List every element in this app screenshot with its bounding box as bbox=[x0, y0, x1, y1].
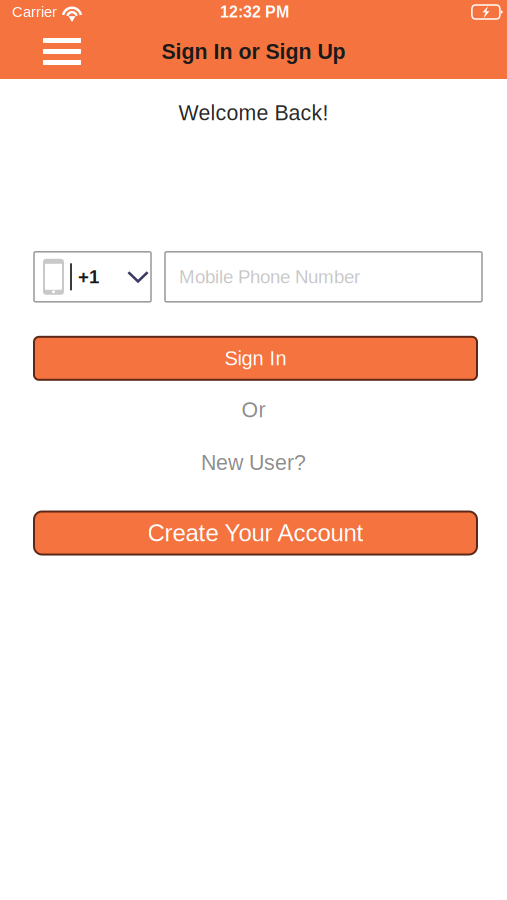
staticText: Or bbox=[241, 398, 265, 422]
button[interactable]: Mobile Phone Number bbox=[165, 252, 482, 302]
button[interactable]: Menu bbox=[0, 24, 100, 79]
staticText: 12:32 PM bbox=[220, 3, 289, 21]
staticText: Carrier bbox=[12, 4, 57, 20]
staticText: Sign In or Sign Up bbox=[161, 40, 345, 63]
staticText: Welcome Back! bbox=[178, 101, 328, 125]
button[interactable]: Country code plus 1 bbox=[34, 252, 151, 302]
staticText: +1 bbox=[78, 266, 99, 287]
button[interactable]: Create Your Account bbox=[34, 511, 477, 554]
staticText: New User? bbox=[201, 451, 306, 474]
button[interactable]: Sign In bbox=[34, 337, 477, 380]
staticText: Create Your Account bbox=[147, 520, 363, 546]
staticText: Sign In bbox=[224, 347, 286, 369]
staticText: Mobile Phone Number bbox=[179, 266, 360, 287]
